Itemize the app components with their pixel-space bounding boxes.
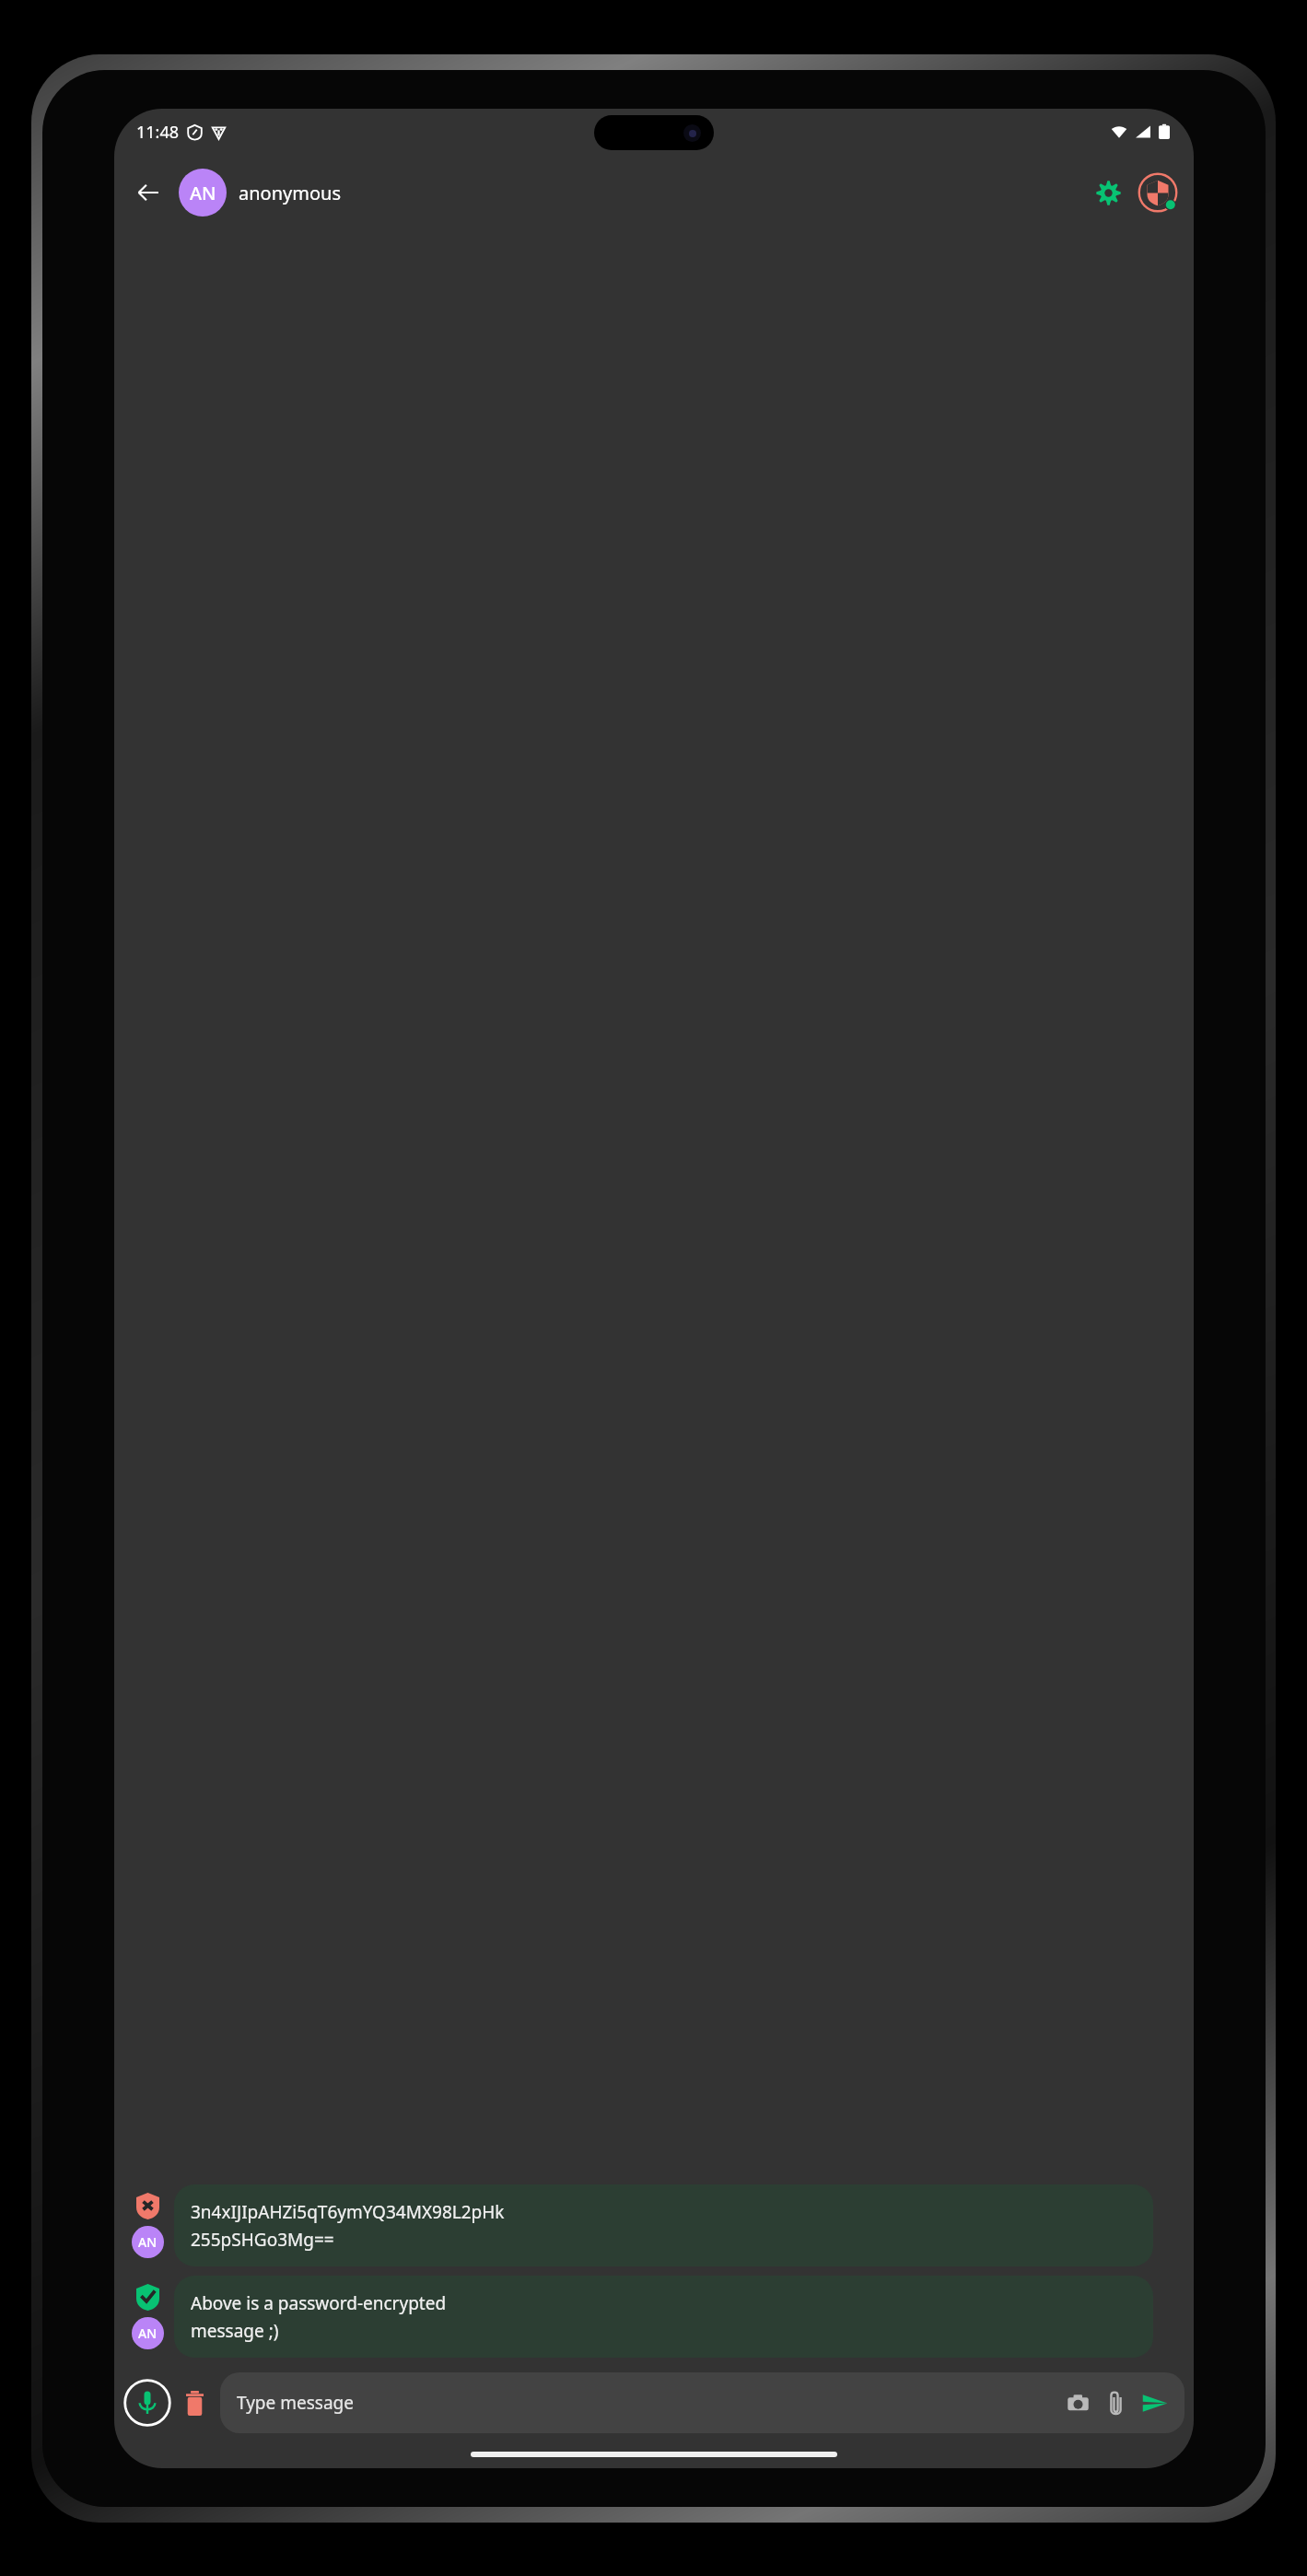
button[interactable]: Type message (220, 2372, 1184, 2433)
button[interactable]: AN (179, 169, 1087, 217)
button[interactable]: Send (1137, 2385, 1172, 2420)
staticText: 3n4xIJIpAHZi5qT6ymYQ34MX98L2pHk 255pSHGo… (191, 2200, 505, 2251)
button[interactable]: Delete (173, 2382, 216, 2424)
staticText: AN (138, 2324, 158, 2342)
staticText: Above is a password-encrypted message ;) (191, 2291, 447, 2342)
staticText: 11:48 (136, 121, 180, 144)
staticText: anonymous (239, 181, 341, 205)
button[interactable]: Camera (1061, 2386, 1094, 2419)
button[interactable]: Security status (1135, 170, 1181, 216)
button[interactable]: Back (127, 171, 169, 214)
staticText: AN (138, 2233, 158, 2251)
button[interactable]: 3n4xIJIpAHZi5qT6ymYQ34MX98L2pHk 255pSHGo… (174, 2184, 1153, 2266)
button[interactable]: Settings (1087, 171, 1129, 214)
button[interactable]: Attach file (1099, 2386, 1132, 2419)
staticText: Type message (237, 2391, 1061, 2415)
button[interactable]: Record voice message (122, 2377, 173, 2429)
button[interactable]: Above is a password-encrypted message ;) (174, 2276, 1153, 2358)
staticText: AN (190, 181, 216, 205)
